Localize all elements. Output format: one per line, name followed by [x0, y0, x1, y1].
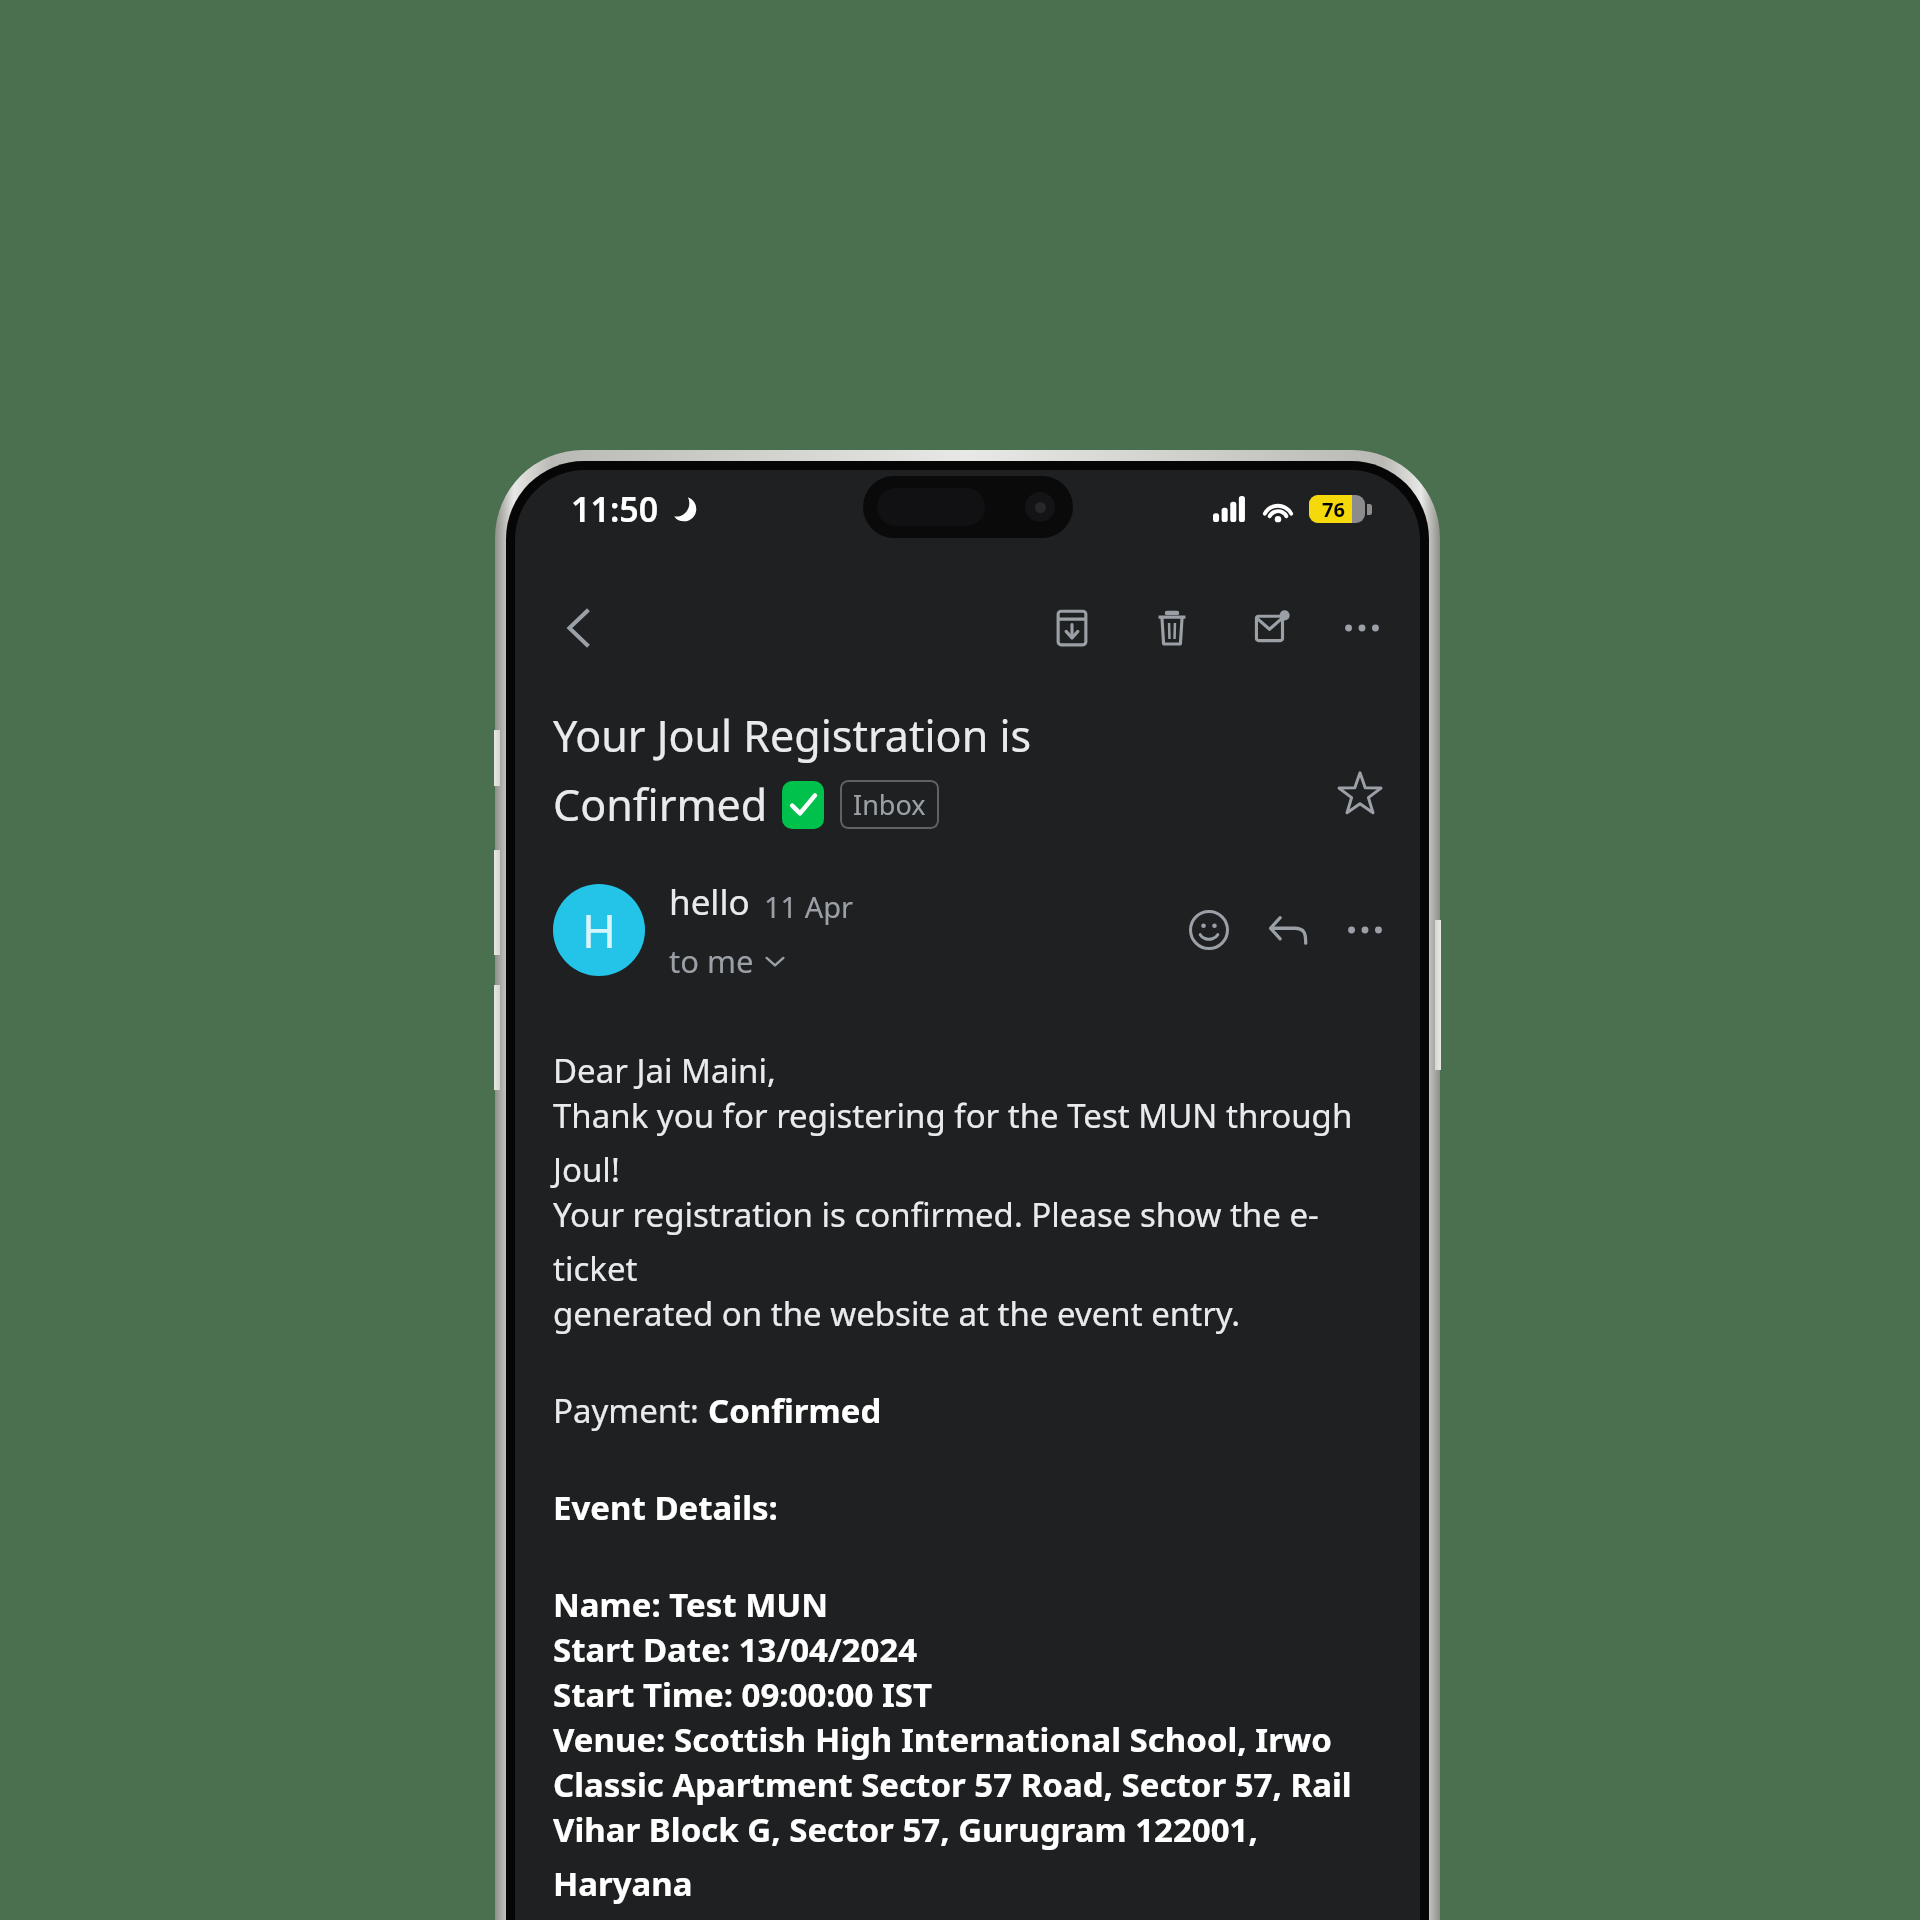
staticText: Start Time: 09:00:00 IST [553, 1672, 933, 1717]
staticText: hello [669, 878, 750, 926]
staticText: Name: Test MUN [553, 1582, 829, 1627]
staticText: Your registration is confirmed. Please s… [553, 1192, 1390, 1291]
staticText: Venue: Scottish High International Schoo… [553, 1717, 1332, 1762]
staticText: Inbox [853, 786, 926, 823]
staticText: Payment: [553, 1388, 708, 1433]
button[interactable]: Mark unread [1236, 592, 1308, 664]
staticText: Confirmed [708, 1388, 882, 1433]
button[interactable]: Delete [1136, 592, 1208, 664]
staticText: Event Details: [553, 1485, 778, 1530]
button[interactable]: Add reaction [1176, 897, 1242, 963]
button[interactable]: H [553, 884, 645, 976]
staticText: Start Date: 13/04/2024 [553, 1627, 918, 1672]
staticText: 11 Apr [764, 887, 854, 926]
staticText: 76 [1322, 496, 1345, 523]
button[interactable]: to me [669, 940, 786, 982]
staticText: Vihar Block G, Sector 57, Gurugram 12200… [553, 1807, 1390, 1906]
staticText: Classic Apartment Sector 57 Road, Sector… [553, 1762, 1352, 1807]
staticText: to me [669, 940, 754, 982]
staticText: 11:50 [571, 486, 659, 532]
staticText: Dear Jai Maini, [553, 1048, 776, 1093]
button[interactable]: More options [1326, 592, 1398, 664]
button[interactable]: Back [541, 590, 617, 666]
button[interactable]: Inbox [840, 780, 939, 829]
staticText: Confirmed [553, 775, 768, 834]
staticText: Your Joul Registration is [553, 706, 1032, 765]
button[interactable]: Star [1322, 756, 1398, 832]
button[interactable]: Archive [1036, 592, 1108, 664]
staticText: H [582, 899, 617, 962]
button[interactable]: More options [1332, 897, 1398, 963]
button[interactable]: Reply [1256, 897, 1322, 963]
staticText: generated on the website at the event en… [553, 1291, 1241, 1336]
staticText: Thank you for registering for the Test M… [553, 1093, 1390, 1192]
